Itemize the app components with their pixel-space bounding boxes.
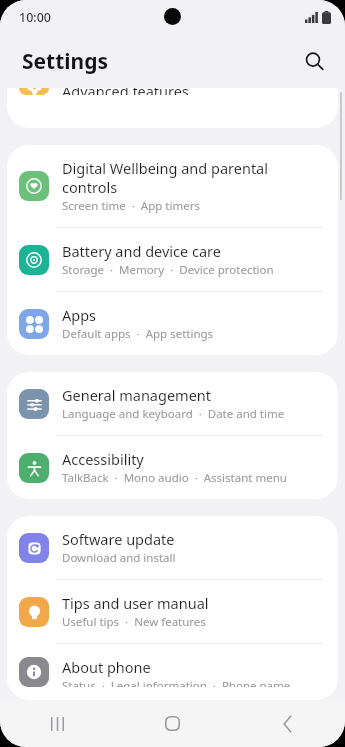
staticText: About phone bbox=[62, 657, 151, 677]
button[interactable]: Battery and device care bbox=[7, 228, 338, 291]
button[interactable]: Home bbox=[115, 700, 230, 747]
staticText: 10:00 bbox=[19, 9, 52, 26]
button[interactable]: General management bbox=[7, 372, 338, 435]
staticText: Useful tips · New features bbox=[62, 614, 206, 630]
button[interactable]: Accessibility bbox=[7, 436, 338, 499]
staticText: Default apps · App settings bbox=[62, 326, 214, 342]
staticText: Screen time · App timers bbox=[62, 198, 200, 214]
staticText: Digital Wellbeing and parental controls bbox=[62, 158, 322, 197]
button[interactable]: Software update bbox=[7, 516, 338, 579]
staticText: Settings bbox=[22, 47, 109, 76]
button[interactable]: Recent apps bbox=[0, 700, 115, 747]
button[interactable]: Tips and user manual bbox=[7, 580, 338, 643]
button[interactable]: Search bbox=[293, 40, 335, 82]
button[interactable]: About phone bbox=[7, 644, 338, 700]
staticText: Language and keyboard · Date and time bbox=[62, 406, 285, 422]
staticText: Status · Legal information · Phone name bbox=[62, 678, 291, 687]
staticText: Advanced features bbox=[62, 88, 189, 95]
staticText: Software update bbox=[62, 529, 175, 549]
staticText: Storage · Memory · Device protection bbox=[62, 262, 274, 278]
staticText: General management bbox=[62, 385, 212, 405]
button[interactable]: Back bbox=[230, 700, 345, 747]
button[interactable]: Digital Wellbeing and parental controls bbox=[7, 145, 338, 227]
staticText: Tips and user manual bbox=[62, 593, 209, 613]
staticText: Battery and device care bbox=[62, 241, 221, 261]
staticText: Download and install bbox=[62, 550, 176, 566]
staticText: Accessibility bbox=[62, 449, 144, 469]
button[interactable]: Advanced features bbox=[7, 88, 338, 108]
staticText: TalkBack · Mono audio · Assistant menu bbox=[62, 470, 287, 486]
staticText: Apps bbox=[62, 305, 97, 325]
button[interactable]: Apps bbox=[7, 292, 338, 355]
